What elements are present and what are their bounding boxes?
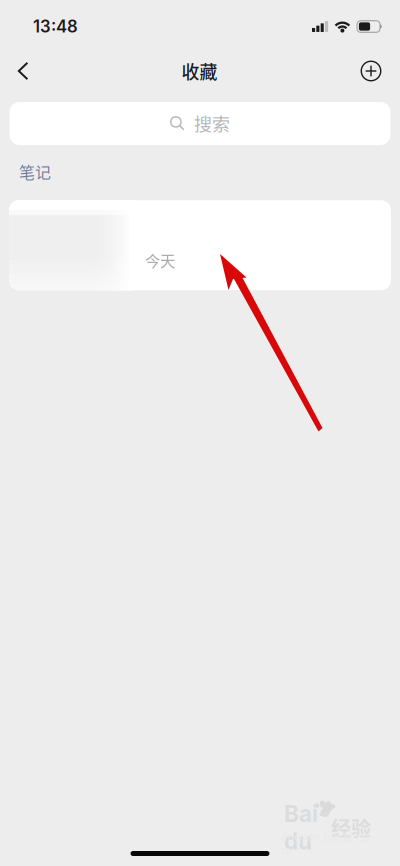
staticText: 13:48 [33,16,78,37]
staticText: 搜索 [194,110,230,137]
button[interactable]: 今天 [9,200,391,290]
staticText: 笔记 [19,160,51,183]
staticText: Baidu [284,800,328,855]
staticText: 经验 [331,813,371,842]
staticText: 今天 [145,249,175,271]
staticText: jingyan.baidu.com [281,830,373,858]
button[interactable]: 搜索 [9,102,390,145]
staticText: 收藏 [181,58,217,84]
button[interactable]: Add [349,49,393,93]
button[interactable]: Back [1,49,45,93]
